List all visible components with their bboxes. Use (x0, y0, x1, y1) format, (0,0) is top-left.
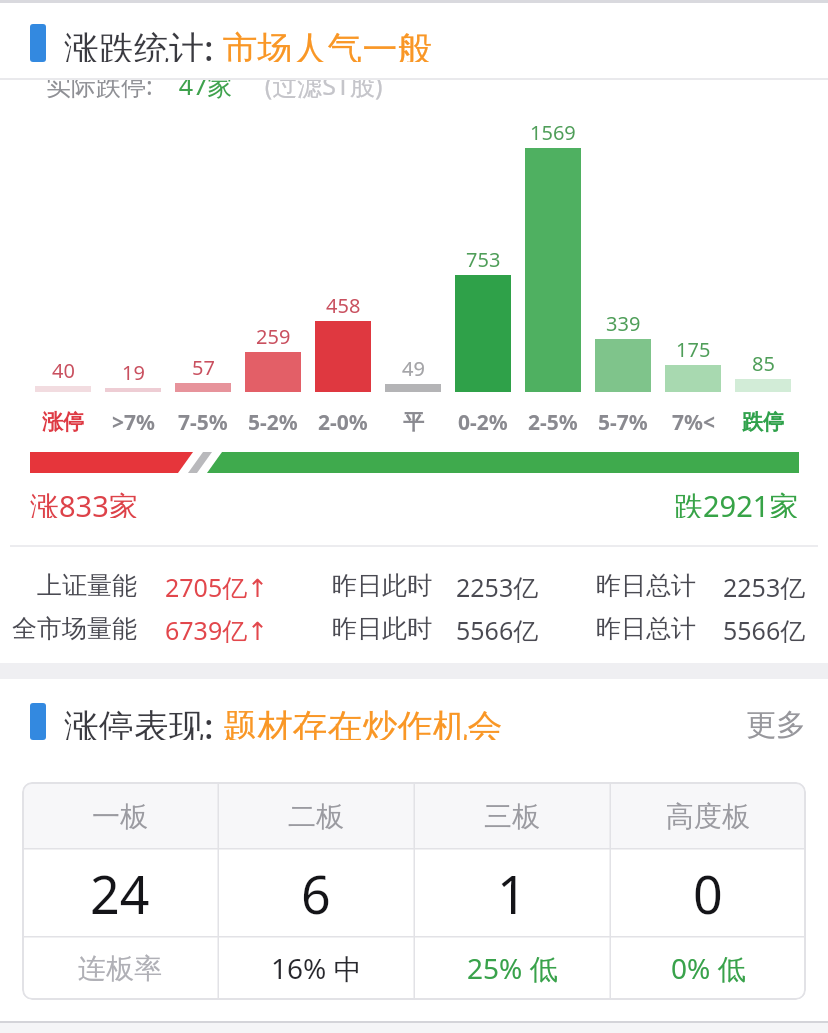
staticText: 三板 (484, 799, 540, 834)
staticText: 259 (256, 323, 291, 349)
staticText: 高度板 (666, 799, 750, 834)
staticText: 85 (752, 350, 775, 376)
staticText: 2705亿↑ (165, 570, 269, 600)
staticText: 昨日此时 (332, 613, 432, 643)
staticText: 0% 低 (671, 949, 746, 987)
staticText: 更多 (746, 706, 806, 740)
staticText: 16% 中 (271, 949, 362, 987)
staticText: 339 (606, 310, 641, 336)
staticText: 实际跌停: 47家 (过滤ST股) (46, 68, 383, 102)
button[interactable]: 一板 (22, 782, 806, 1000)
staticText: 7%< (672, 408, 715, 437)
staticText: 一板 (92, 799, 148, 834)
staticText: 175 (676, 336, 711, 362)
staticText: 19 (122, 359, 145, 385)
button[interactable]: 涨停表现: 题材存在炒作机会 (20, 696, 720, 746)
staticText: 5566亿 (456, 613, 539, 643)
staticText: 5566亿 (723, 613, 806, 643)
staticText: 昨日总计 (596, 570, 696, 600)
staticText: 涨跌统计: 市场人气一般 (64, 24, 433, 62)
staticText: 5-7% (598, 408, 648, 437)
staticText: 涨停表现: 题材存在炒作机会 (64, 702, 503, 740)
staticText: 1 (497, 858, 527, 929)
staticText: 跌停 (742, 409, 784, 435)
staticText: 涨833家 (30, 486, 138, 518)
staticText: 753 (466, 246, 501, 272)
staticText: 昨日此时 (332, 570, 432, 600)
staticText: >7% (112, 408, 155, 437)
staticText: 49 (402, 355, 425, 381)
staticText: 0 (693, 858, 723, 929)
staticText: 57 (192, 354, 215, 380)
staticText: 6 (301, 858, 331, 929)
staticText: 平 (403, 409, 424, 435)
staticText: 2253亿 (456, 570, 539, 600)
staticText: 1569 (530, 119, 576, 145)
staticText: 6739亿↑ (165, 613, 269, 643)
staticText: 2-0% (318, 408, 368, 437)
button[interactable]: 更多 (700, 706, 806, 740)
staticText: 二板 (288, 799, 344, 834)
button[interactable]: 涨跌统计: 市场人气一般 (0, 0, 828, 78)
staticText: 昨日总计 (596, 613, 696, 643)
staticText: 458 (326, 292, 361, 318)
staticText: 25% 低 (467, 949, 558, 987)
staticText: 涨停 (42, 409, 84, 435)
staticText: 连板率 (78, 951, 162, 986)
staticText: 40 (52, 357, 75, 383)
staticText: 跌2921家 (674, 486, 799, 518)
staticText: 2253亿 (723, 570, 806, 600)
staticText: 24 (90, 858, 150, 929)
staticText: 5-2% (248, 408, 298, 437)
staticText: 2-5% (528, 408, 578, 437)
staticText: 全市场量能 (12, 613, 137, 643)
staticText: 0-2% (458, 408, 508, 437)
staticText: 7-5% (178, 408, 228, 437)
staticText: 上证量能 (37, 570, 137, 600)
